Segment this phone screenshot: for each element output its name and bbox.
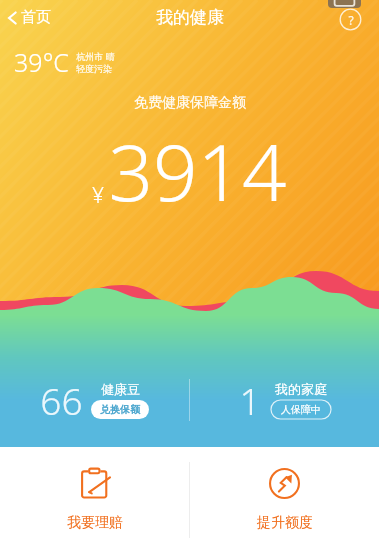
staticText: 我要理赔 (67, 514, 123, 532)
staticText: 1 (239, 375, 261, 425)
staticText: 健康豆 (101, 381, 140, 397)
staticText: 3914 (108, 118, 287, 224)
staticText: ? (348, 12, 354, 28)
button[interactable]: 首页 (0, 3, 61, 32)
staticText: 轻度污染 (76, 63, 112, 74)
staticText: 兑换保额 (100, 403, 140, 416)
staticText: 免费健康保障金额 (134, 94, 246, 112)
button[interactable]: 66 (0, 375, 189, 425)
staticText: 提升额度 (257, 514, 313, 532)
staticText: 我的家庭 (275, 381, 327, 397)
button[interactable]: 1 (190, 375, 379, 425)
staticText: 66 (40, 375, 83, 425)
staticText: 首页 (21, 8, 51, 27)
button[interactable]: 我要理赔 (0, 458, 189, 542)
staticText: ¥ (92, 181, 104, 210)
button[interactable]: 提升额度 (190, 458, 379, 542)
staticText: 杭州市 晴 (76, 50, 115, 62)
staticText: 39°C (14, 45, 69, 79)
staticText: 人保障中 (281, 403, 321, 416)
staticText: 我的健康 (156, 7, 224, 28)
button[interactable]: Help (339, 8, 362, 31)
